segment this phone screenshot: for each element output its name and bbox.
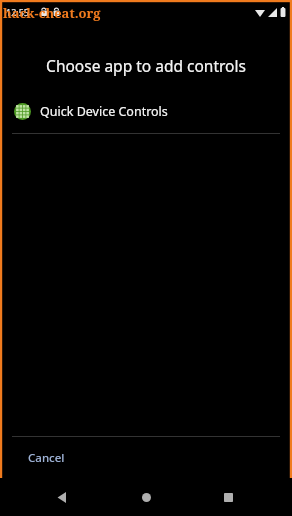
staticText: 12:55 <box>6 6 30 18</box>
staticText: Cancel <box>28 450 65 466</box>
button[interactable]: Recent apps <box>214 483 242 511</box>
button[interactable]: Home <box>132 483 160 511</box>
button[interactable]: Quick Device Controls <box>0 98 292 124</box>
staticText: Quick Device Controls <box>40 103 168 120</box>
staticText: Choose app to add controls <box>0 55 292 76</box>
button[interactable]: Back <box>48 483 76 511</box>
staticText: hack-cheat.org <box>3 4 101 22</box>
button[interactable]: Cancel <box>20 444 73 472</box>
